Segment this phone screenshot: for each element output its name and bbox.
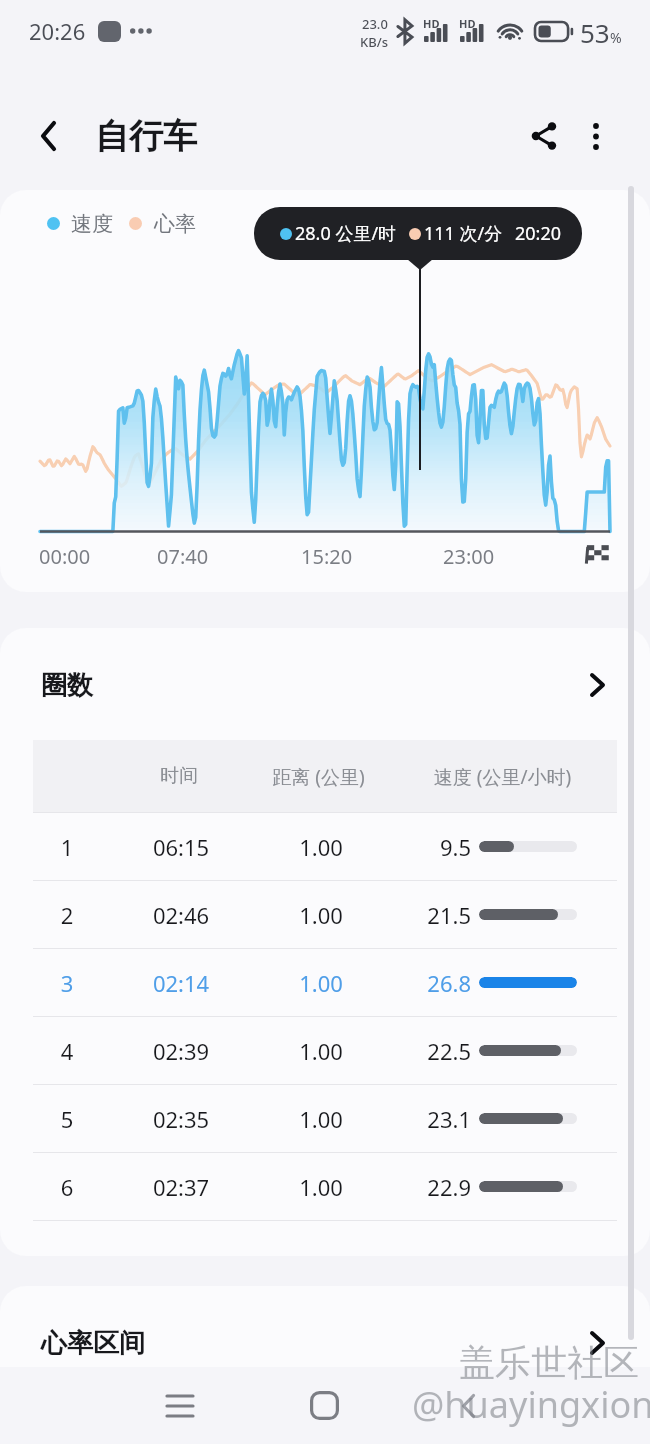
- button[interactable]: 2: [0, 881, 650, 948]
- button[interactable]: 5: [0, 1085, 650, 1152]
- staticText: 23:00: [443, 543, 495, 570]
- staticText: 06:15: [101, 832, 261, 862]
- staticText: 1.00: [261, 1172, 381, 1202]
- staticText: 1.00: [261, 1036, 381, 1066]
- staticText: 111 次/分: [424, 221, 503, 246]
- staticText: 53: [580, 15, 610, 47]
- staticText: 02:35: [101, 1104, 261, 1134]
- staticText: 1.00: [261, 1104, 381, 1134]
- button[interactable]: 6: [0, 1153, 650, 1220]
- staticText: 6: [33, 1172, 101, 1202]
- staticText: 1.00: [261, 968, 381, 998]
- staticText: 23.1: [381, 1104, 471, 1134]
- staticText: 自行车: [95, 115, 197, 158]
- staticText: 1: [33, 832, 101, 862]
- staticText: %: [610, 28, 622, 47]
- staticText: 02:39: [101, 1036, 261, 1066]
- button[interactable]: Recents: [108, 1367, 252, 1444]
- staticText: 02:46: [101, 900, 261, 930]
- staticText: 1.00: [261, 900, 381, 930]
- staticText: 圈数: [41, 669, 93, 702]
- staticText: 22.9: [381, 1172, 471, 1202]
- staticText: 00:00: [39, 543, 91, 570]
- staticText: 5: [33, 1104, 101, 1134]
- staticText: 20:26: [29, 16, 86, 46]
- button[interactable]: Home: [252, 1367, 396, 1444]
- staticText: HD: [459, 16, 476, 31]
- button[interactable]: 心率区间: [0, 1286, 650, 1398]
- button[interactable]: 3: [0, 949, 650, 1016]
- staticText: 时间: [146, 764, 212, 788]
- staticText: 20:20: [515, 221, 562, 246]
- staticText: 23.0: [362, 15, 388, 33]
- button[interactable]: 1: [0, 813, 650, 880]
- staticText: 速度: [71, 211, 113, 237]
- button[interactable]: Back: [16, 104, 80, 168]
- staticText: 4: [33, 1036, 101, 1066]
- staticText: 1.00: [261, 832, 381, 862]
- button[interactable]: 圈数: [0, 628, 650, 740]
- staticText: @huayingxiong: [412, 1380, 650, 1429]
- staticText: 15:20: [301, 543, 353, 570]
- staticText: 02:37: [101, 1172, 261, 1202]
- button[interactable]: Share: [512, 104, 576, 168]
- staticText: 3: [33, 968, 101, 998]
- button[interactable]: Back: [396, 1367, 540, 1444]
- staticText: 22.5: [381, 1036, 471, 1066]
- staticText: KB/s: [360, 33, 389, 47]
- staticText: 心率区间: [41, 1327, 145, 1360]
- staticText: 距离 (公里): [268, 764, 369, 790]
- staticText: 盖乐世社区: [459, 1340, 639, 1385]
- staticText: 21.5: [381, 900, 471, 930]
- staticText: 2: [33, 900, 101, 930]
- staticText: 速度 (公里/小时): [432, 764, 573, 790]
- button[interactable]: More options: [564, 104, 628, 168]
- staticText: 07:40: [157, 543, 209, 570]
- staticText: 心率: [154, 211, 196, 237]
- staticText: 28.0 公里/时: [295, 221, 397, 246]
- staticText: 02:14: [101, 968, 261, 998]
- staticText: 26.8: [381, 968, 471, 998]
- staticText: HD: [423, 16, 440, 31]
- button[interactable]: 4: [0, 1017, 650, 1084]
- staticText: 9.5: [381, 832, 471, 862]
